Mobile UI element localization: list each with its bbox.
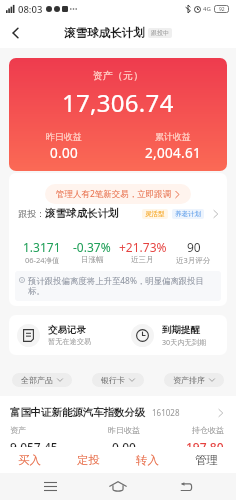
staticText: 银行卡 — [101, 375, 125, 385]
staticText: 管理 — [195, 453, 218, 467]
staticText: 0.00 — [112, 439, 136, 447]
staticText: 预计跟投偏离度将上升至48%，明显偏离跟投目标。 — [28, 275, 212, 297]
staticText: 0.00 — [50, 144, 78, 162]
staticText: 到期提醒 — [162, 324, 200, 336]
staticText: 06-24净值 — [25, 255, 60, 265]
staticText: 197.80 — [186, 439, 224, 447]
staticText: +21.73% — [119, 239, 167, 255]
staticText: 92 — [219, 6, 225, 13]
staticText: 交易记录 — [48, 324, 86, 336]
button[interactable]: 富国中证新能源汽车指数分级 — [0, 396, 236, 447]
staticText: 1.3171 — [23, 239, 61, 255]
button[interactable]: Back — [0, 18, 30, 48]
button[interactable]: Home — [84, 473, 152, 500]
staticText: 转入 — [136, 453, 159, 467]
button[interactable]: Recents — [16, 473, 84, 500]
staticText: 资产（元） — [93, 69, 143, 82]
staticText: 17,306.74 — [62, 86, 174, 119]
staticText: 90 — [187, 239, 201, 255]
staticText: 养老计划 — [175, 210, 201, 218]
button[interactable]: 交易记录 — [9, 315, 118, 355]
staticText: 4G — [203, 5, 211, 13]
staticText: 9,057.45 — [10, 439, 58, 447]
button[interactable]: 全部产品 — [12, 373, 72, 387]
staticText: 30天内无到期 — [162, 337, 207, 347]
staticText: 富国中证新能源汽车指数分级 — [10, 406, 146, 419]
button[interactable]: 转入 — [118, 447, 177, 473]
button[interactable]: 买入 — [0, 447, 59, 473]
staticText: 资产 — [10, 425, 26, 435]
button[interactable]: 到期提醒 — [118, 315, 227, 355]
staticText: 累计收益 — [155, 131, 191, 142]
button[interactable]: 银行卡 — [92, 373, 144, 387]
staticText: 资产排序 — [173, 375, 205, 385]
staticText: 持仓收益 — [192, 425, 224, 435]
staticText: 跟投： — [18, 208, 45, 219]
staticText: 定投 — [77, 453, 100, 467]
staticText: 暂无在途交易 — [48, 337, 92, 346]
staticText: 灵活型 — [145, 210, 165, 218]
staticText: 近三月 — [131, 255, 154, 264]
staticText: 滚雪球成长计划 — [64, 26, 145, 40]
staticText: 管理人有2笔新交易，立即跟调 — [56, 188, 172, 200]
button[interactable]: 资产排序 — [164, 373, 224, 387]
staticText: -0.37% — [73, 239, 111, 255]
staticText: 全部产品 — [21, 375, 53, 385]
staticText: 滚雪球成长计划 — [45, 207, 119, 220]
staticText: 161028 — [152, 407, 180, 418]
staticText: 昨日收益 — [108, 425, 140, 435]
button[interactable]: 管理人有2笔新交易，立即跟调 — [45, 184, 191, 204]
staticText: 2,004.61 — [145, 144, 201, 162]
staticText: 08:03 — [18, 3, 43, 16]
button[interactable]: 管理 — [177, 447, 236, 473]
button[interactable]: Back — [152, 473, 220, 500]
staticText: 昨日收益 — [46, 131, 82, 142]
button[interactable]: 跟投： — [9, 207, 227, 220]
staticText: 跟投中 — [151, 29, 169, 37]
button[interactable]: 定投 — [59, 447, 118, 473]
staticText: 买入 — [18, 453, 41, 467]
staticText: 近3月评分 — [176, 255, 211, 265]
staticText: 日涨幅 — [81, 255, 104, 264]
